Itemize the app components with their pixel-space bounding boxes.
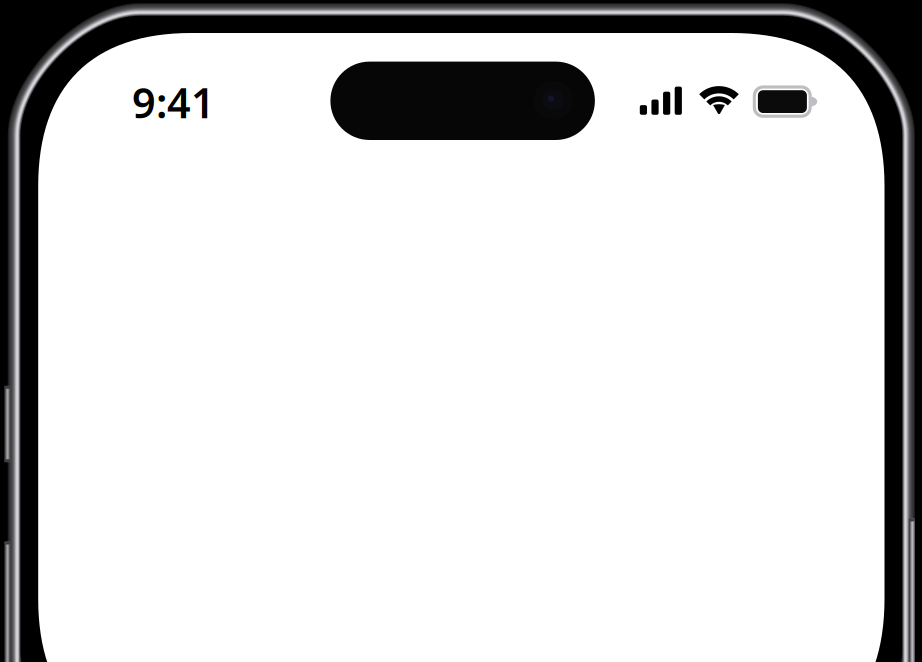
staticText: 9:41: [132, 75, 215, 130]
